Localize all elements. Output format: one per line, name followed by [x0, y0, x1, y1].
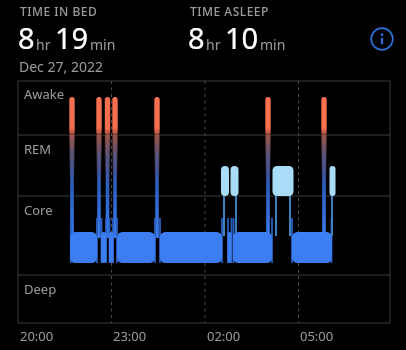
staticText: TIME ASLEEP: [190, 3, 269, 19]
staticText: 8: [188, 18, 205, 57]
staticText: TIME IN BED: [20, 3, 98, 19]
staticText: 19: [55, 18, 89, 57]
staticText: Deep: [24, 280, 57, 298]
staticText: min: [90, 35, 116, 54]
staticText: hr: [206, 35, 221, 54]
staticText: min: [260, 35, 286, 54]
staticText: 10: [225, 18, 259, 57]
staticText: 20:00: [20, 327, 54, 345]
staticText: 8: [18, 18, 35, 57]
staticText: hr: [36, 35, 51, 54]
staticText: Core: [24, 201, 53, 219]
staticText: 05:00: [300, 327, 334, 345]
staticText: REM: [24, 140, 52, 158]
button[interactable]: Information about sleep stages: [370, 27, 394, 51]
staticText: Dec 27, 2022: [19, 57, 103, 76]
staticText: Awake: [24, 85, 65, 103]
staticText: 23:00: [113, 327, 147, 345]
staticText: 02:00: [207, 327, 241, 345]
